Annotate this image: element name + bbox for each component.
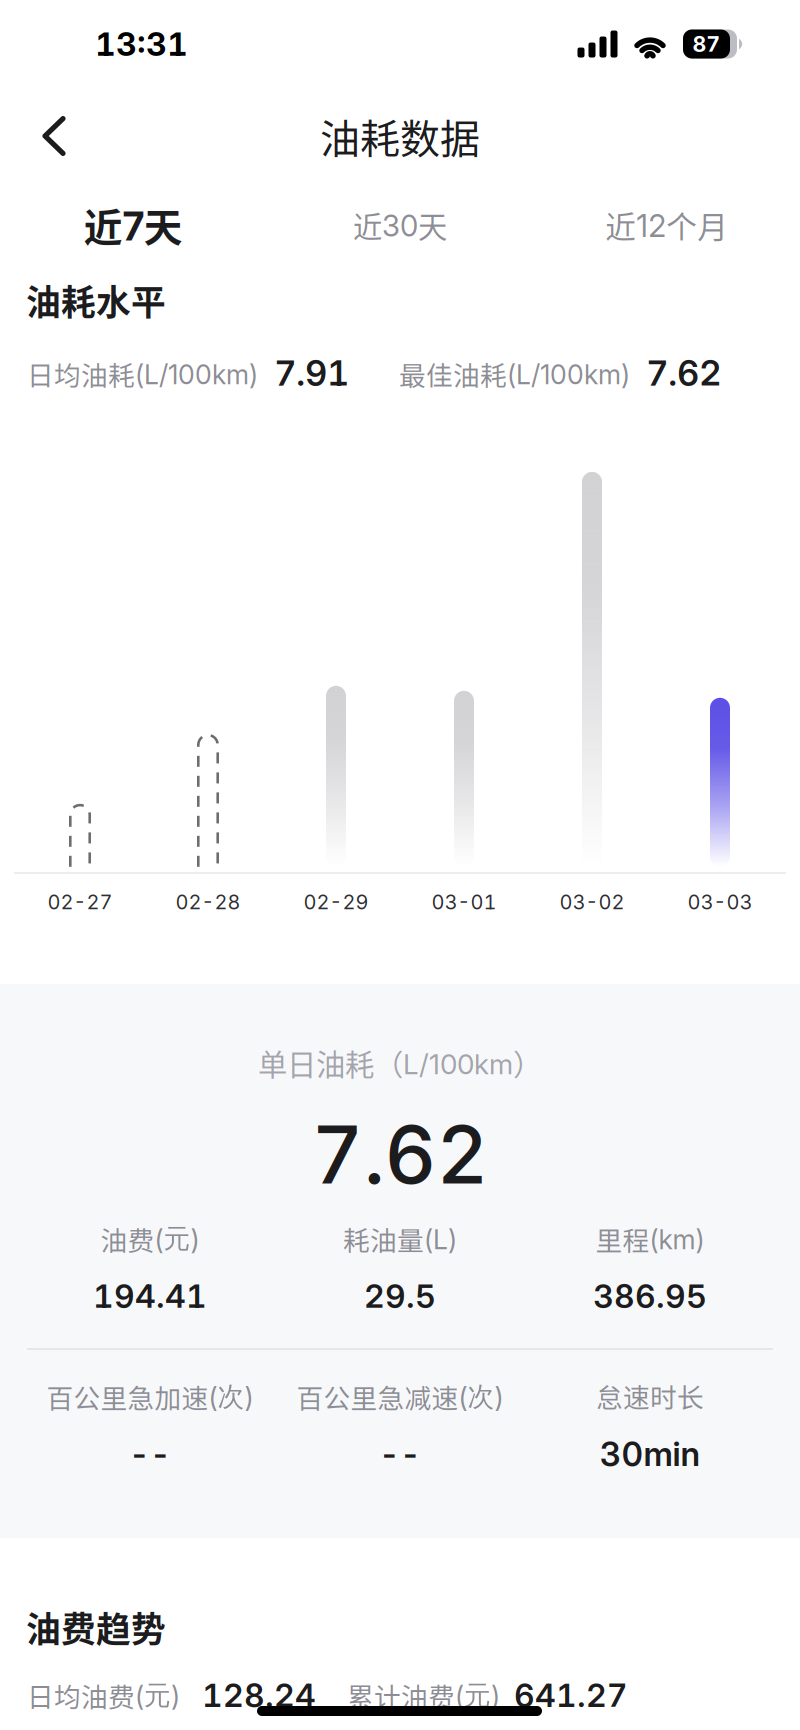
staticText: --	[129, 1434, 171, 1473]
staticText: 单日油耗（L/100km）	[258, 1042, 542, 1083]
staticText: 累计油费(元)	[347, 1676, 500, 1714]
staticText: 近12个月	[605, 203, 728, 247]
staticText: 油耗水平	[26, 275, 166, 325]
staticText: 7.91	[274, 352, 349, 394]
staticText: --	[379, 1434, 421, 1473]
button[interactable]: 近30天	[267, 188, 533, 262]
staticText: 87	[692, 31, 720, 57]
button[interactable]: Back	[0, 100, 94, 172]
staticText: 7.62	[311, 1106, 488, 1203]
staticText: 近7天	[84, 198, 183, 252]
staticText: 128.24	[202, 1676, 316, 1715]
staticText: 油费趋势	[26, 1602, 166, 1652]
staticText: 7.62	[646, 352, 721, 394]
staticText: 30min	[599, 1434, 700, 1474]
staticText: 03-01	[431, 890, 496, 914]
staticText: 最佳油耗(L/100km)	[399, 355, 630, 393]
staticText: 194.41	[93, 1277, 207, 1315]
staticText: 03-02	[559, 890, 624, 914]
staticText: 怠速时长	[596, 1377, 704, 1415]
staticText: 油费(元)	[100, 1220, 199, 1258]
button[interactable]: 近12个月	[533, 188, 800, 262]
staticText: 百公里急加速(次)	[46, 1378, 253, 1415]
staticText: 02-28	[175, 890, 240, 914]
staticText: 29.5	[364, 1277, 436, 1315]
staticText: 百公里急减速(次)	[296, 1378, 503, 1415]
staticText: 耗油量(L)	[343, 1220, 457, 1258]
staticText: 02-29	[303, 890, 368, 914]
staticText: 02-27	[47, 890, 112, 914]
button[interactable]: 近7天	[0, 188, 267, 262]
staticText: 里程(km)	[595, 1220, 704, 1258]
staticText: 日均油耗(L/100km)	[27, 355, 258, 393]
staticText: 日均油费(元)	[27, 1676, 180, 1714]
staticText: 13:31	[95, 25, 188, 63]
staticText: 近30天	[353, 204, 447, 246]
staticText: 油耗数据	[320, 107, 480, 165]
staticText: 641.27	[514, 1676, 628, 1715]
staticText: 386.95	[593, 1277, 707, 1315]
staticText: 03-03	[687, 890, 752, 914]
